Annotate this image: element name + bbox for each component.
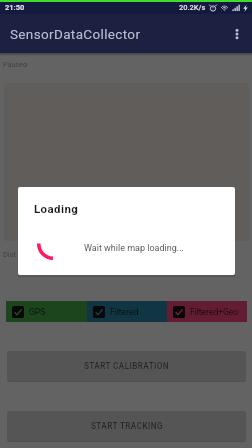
staticText: START CALIBRATION <box>84 361 170 371</box>
staticText: Filtered <box>110 307 139 317</box>
staticText: GPS <box>29 307 46 317</box>
button[interactable]: Filtered+Geo <box>167 301 247 322</box>
staticText: 20.2K/s <box>179 3 206 12</box>
button[interactable]: More options <box>220 17 252 51</box>
staticText: Filtered+Geo <box>190 307 239 317</box>
staticText: START TRACKING <box>91 421 163 431</box>
button[interactable]: Filtered <box>87 301 167 322</box>
staticText: Loading <box>34 202 79 215</box>
staticText: 21:50 <box>5 3 25 12</box>
staticText: Wait while map loading... <box>84 243 184 254</box>
button[interactable]: START TRACKING <box>7 411 246 441</box>
button[interactable]: START CALIBRATION <box>7 351 246 381</box>
staticText: Paused <box>3 60 27 68</box>
button[interactable]: GPS <box>6 301 87 322</box>
staticText: Dist <box>3 250 16 259</box>
staticText: SensorDataCollector <box>10 26 141 42</box>
